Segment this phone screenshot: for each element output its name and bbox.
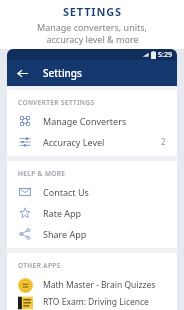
staticText: SETTINGS — [63, 4, 122, 19]
staticText: Accuracy Level — [43, 136, 161, 148]
button[interactable]: RTO Exam: Driving Licence Test — [7, 296, 177, 310]
staticText: Contact Us — [43, 186, 166, 198]
button[interactable]: Math Master - Brain Quizzes — [7, 273, 177, 296]
staticText: RTO Exam: Driving Licence Test — [43, 296, 167, 310]
staticText: CONVERTER SETTINGS — [18, 98, 95, 107]
staticText: 5:29 — [158, 50, 172, 60]
staticText: Share App — [43, 228, 166, 240]
button[interactable]: Back — [13, 64, 31, 82]
staticText: Manage converters, units, — [37, 21, 147, 33]
button[interactable]: Rate App — [7, 202, 177, 223]
button[interactable]: Share App — [7, 223, 177, 244]
button[interactable]: Manage Converters — [7, 110, 177, 131]
button[interactable]: Contact Us — [7, 181, 177, 202]
staticText: accuracy level & more — [46, 33, 139, 45]
staticText: HELP & MORE — [18, 169, 66, 178]
staticText: 2 — [161, 136, 166, 147]
staticText: OTHER APPS — [18, 261, 61, 270]
button[interactable]: Accuracy Level — [7, 131, 177, 152]
staticText: Manage Converters — [43, 115, 166, 127]
staticText: Settings — [43, 66, 82, 80]
staticText: Math Master - Brain Quizzes — [43, 279, 156, 291]
staticText: Rate App — [43, 207, 166, 219]
